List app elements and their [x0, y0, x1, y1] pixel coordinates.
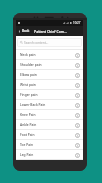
staticText: Leg Pain [20, 153, 34, 157]
staticText: 10:27 [73, 21, 81, 25]
button[interactable]: More information [75, 103, 80, 108]
button[interactable]: Shoulder pain [16, 60, 83, 70]
staticText: Shoulder pain [20, 63, 42, 67]
staticText: Neck pain [20, 53, 36, 57]
button[interactable]: Toe Pain [16, 140, 83, 150]
staticText: Search content... [24, 41, 49, 45]
staticText: Ankle Pain [20, 123, 37, 127]
staticText: Patient Chief Com... [34, 29, 67, 34]
button[interactable]: Elbow pain [16, 70, 83, 80]
button[interactable]: More information [75, 133, 80, 138]
staticText: Finger pain [20, 93, 38, 97]
staticText: Toe Pain [20, 143, 34, 147]
staticText: Lower Back Pain [20, 103, 46, 107]
button[interactable]: More information [75, 153, 80, 158]
button[interactable]: More information [75, 73, 80, 78]
button[interactable]: Finger pain [16, 90, 83, 100]
button[interactable]: Neck pain [16, 50, 83, 60]
button[interactable]: Ankle Pain [16, 120, 83, 130]
button[interactable]: Knee Pain [16, 110, 83, 120]
button[interactable]: More information [75, 143, 80, 148]
staticText: Back [22, 29, 30, 33]
button[interactable]: Foot Pain [16, 130, 83, 140]
button[interactable]: More information [75, 93, 80, 98]
button[interactable]: More information [75, 63, 80, 68]
button[interactable]: More information [75, 123, 80, 128]
button[interactable]: Lower Back Pain [16, 100, 83, 110]
staticText: Foot Pain [20, 133, 35, 137]
button[interactable]: Search content... [16, 36, 83, 49]
button[interactable]: More information [75, 113, 80, 118]
button[interactable]: More information [75, 53, 80, 58]
staticText: Wrist pain [20, 83, 36, 87]
button[interactable]: Wrist pain [16, 80, 83, 90]
other: Back [18, 30, 21, 33]
staticText: Knee Pain [20, 113, 36, 117]
staticText: Elbow pain [20, 73, 37, 77]
button[interactable]: Back [17, 28, 31, 34]
button[interactable]: More information [75, 83, 80, 88]
button[interactable]: Leg Pain [16, 150, 83, 160]
